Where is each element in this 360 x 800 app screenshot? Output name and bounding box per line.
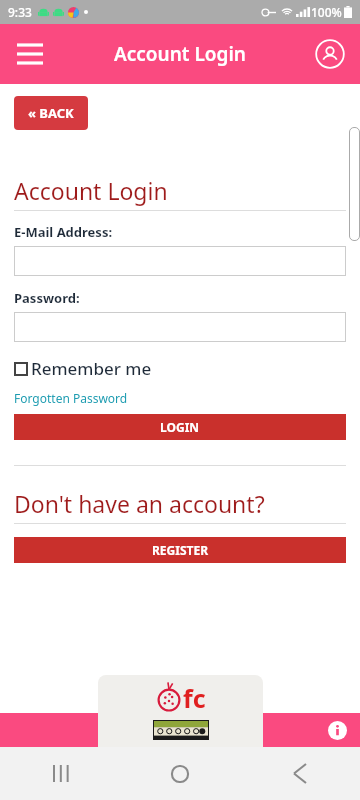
button[interactable]: Information <box>324 717 350 743</box>
staticText: Remember me <box>31 357 152 380</box>
staticText: Password: <box>14 289 80 307</box>
staticText: Don't have an account? <box>14 488 265 519</box>
button[interactable]: Back <box>272 747 328 800</box>
staticText: 100% <box>311 4 342 20</box>
button[interactable]: Account <box>308 32 352 76</box>
button[interactable]: Forgotten Password <box>14 390 128 406</box>
button[interactable]: Menu <box>8 32 52 76</box>
button[interactable] <box>14 246 346 276</box>
button[interactable]: Recent apps <box>32 747 88 800</box>
staticText: 9:33 <box>8 4 32 20</box>
staticText: LOGIN <box>160 419 200 435</box>
button[interactable]: Home <box>152 747 208 800</box>
button[interactable] <box>14 312 346 342</box>
button[interactable]: fc <box>98 675 263 747</box>
button[interactable]: Remember me <box>14 357 152 380</box>
staticText: REGISTER <box>152 542 209 558</box>
staticText: Account Login <box>114 41 246 67</box>
staticText: Account Login <box>14 175 168 206</box>
button[interactable]: LOGIN <box>14 414 346 440</box>
button[interactable]: « BACK <box>14 96 88 130</box>
staticText: fc <box>183 681 206 715</box>
staticText: Forgotten Password <box>14 390 128 406</box>
staticText: E-Mail Address: <box>14 223 113 241</box>
button[interactable]: REGISTER <box>14 537 346 563</box>
staticText: « BACK <box>28 104 74 122</box>
